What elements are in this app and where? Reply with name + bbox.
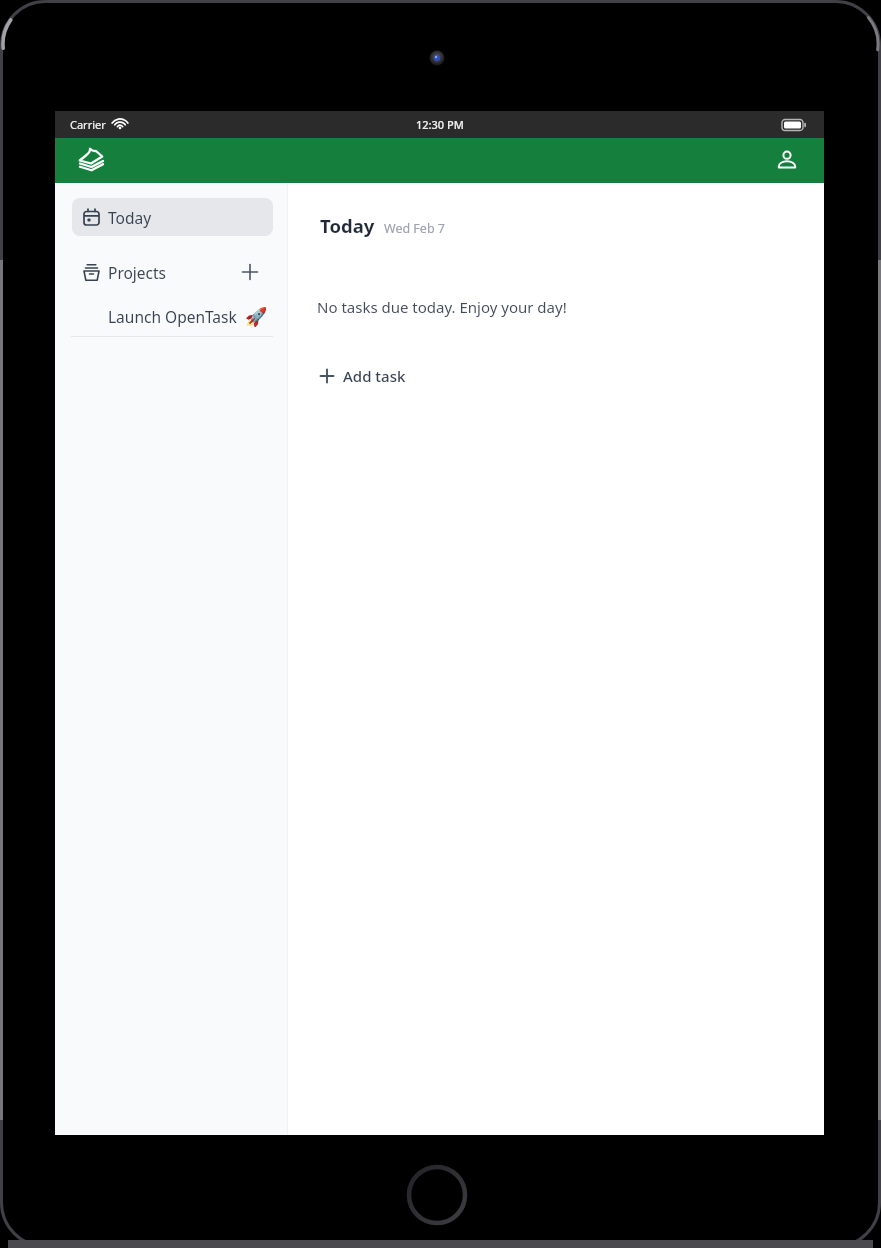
staticText: 🚀 xyxy=(245,306,268,327)
button[interactable]: Today xyxy=(72,198,273,236)
staticText: Today xyxy=(320,213,375,238)
staticText: Projects xyxy=(108,262,167,283)
staticText: Today xyxy=(108,207,152,228)
staticText: 12:30 PM xyxy=(416,117,464,132)
staticText: No tasks due today. Enjoy your day! xyxy=(317,297,567,317)
button[interactable] xyxy=(776,150,798,172)
staticText: Carrier xyxy=(70,117,106,132)
staticText: Add task xyxy=(343,366,406,386)
staticText: Wed Feb 7 xyxy=(384,220,445,237)
staticText: Launch OpenTask xyxy=(108,306,237,327)
button[interactable]: Projects xyxy=(55,254,288,290)
button[interactable] xyxy=(79,148,104,173)
button[interactable]: Launch OpenTask xyxy=(55,298,288,334)
button[interactable]: Add task xyxy=(320,366,406,386)
